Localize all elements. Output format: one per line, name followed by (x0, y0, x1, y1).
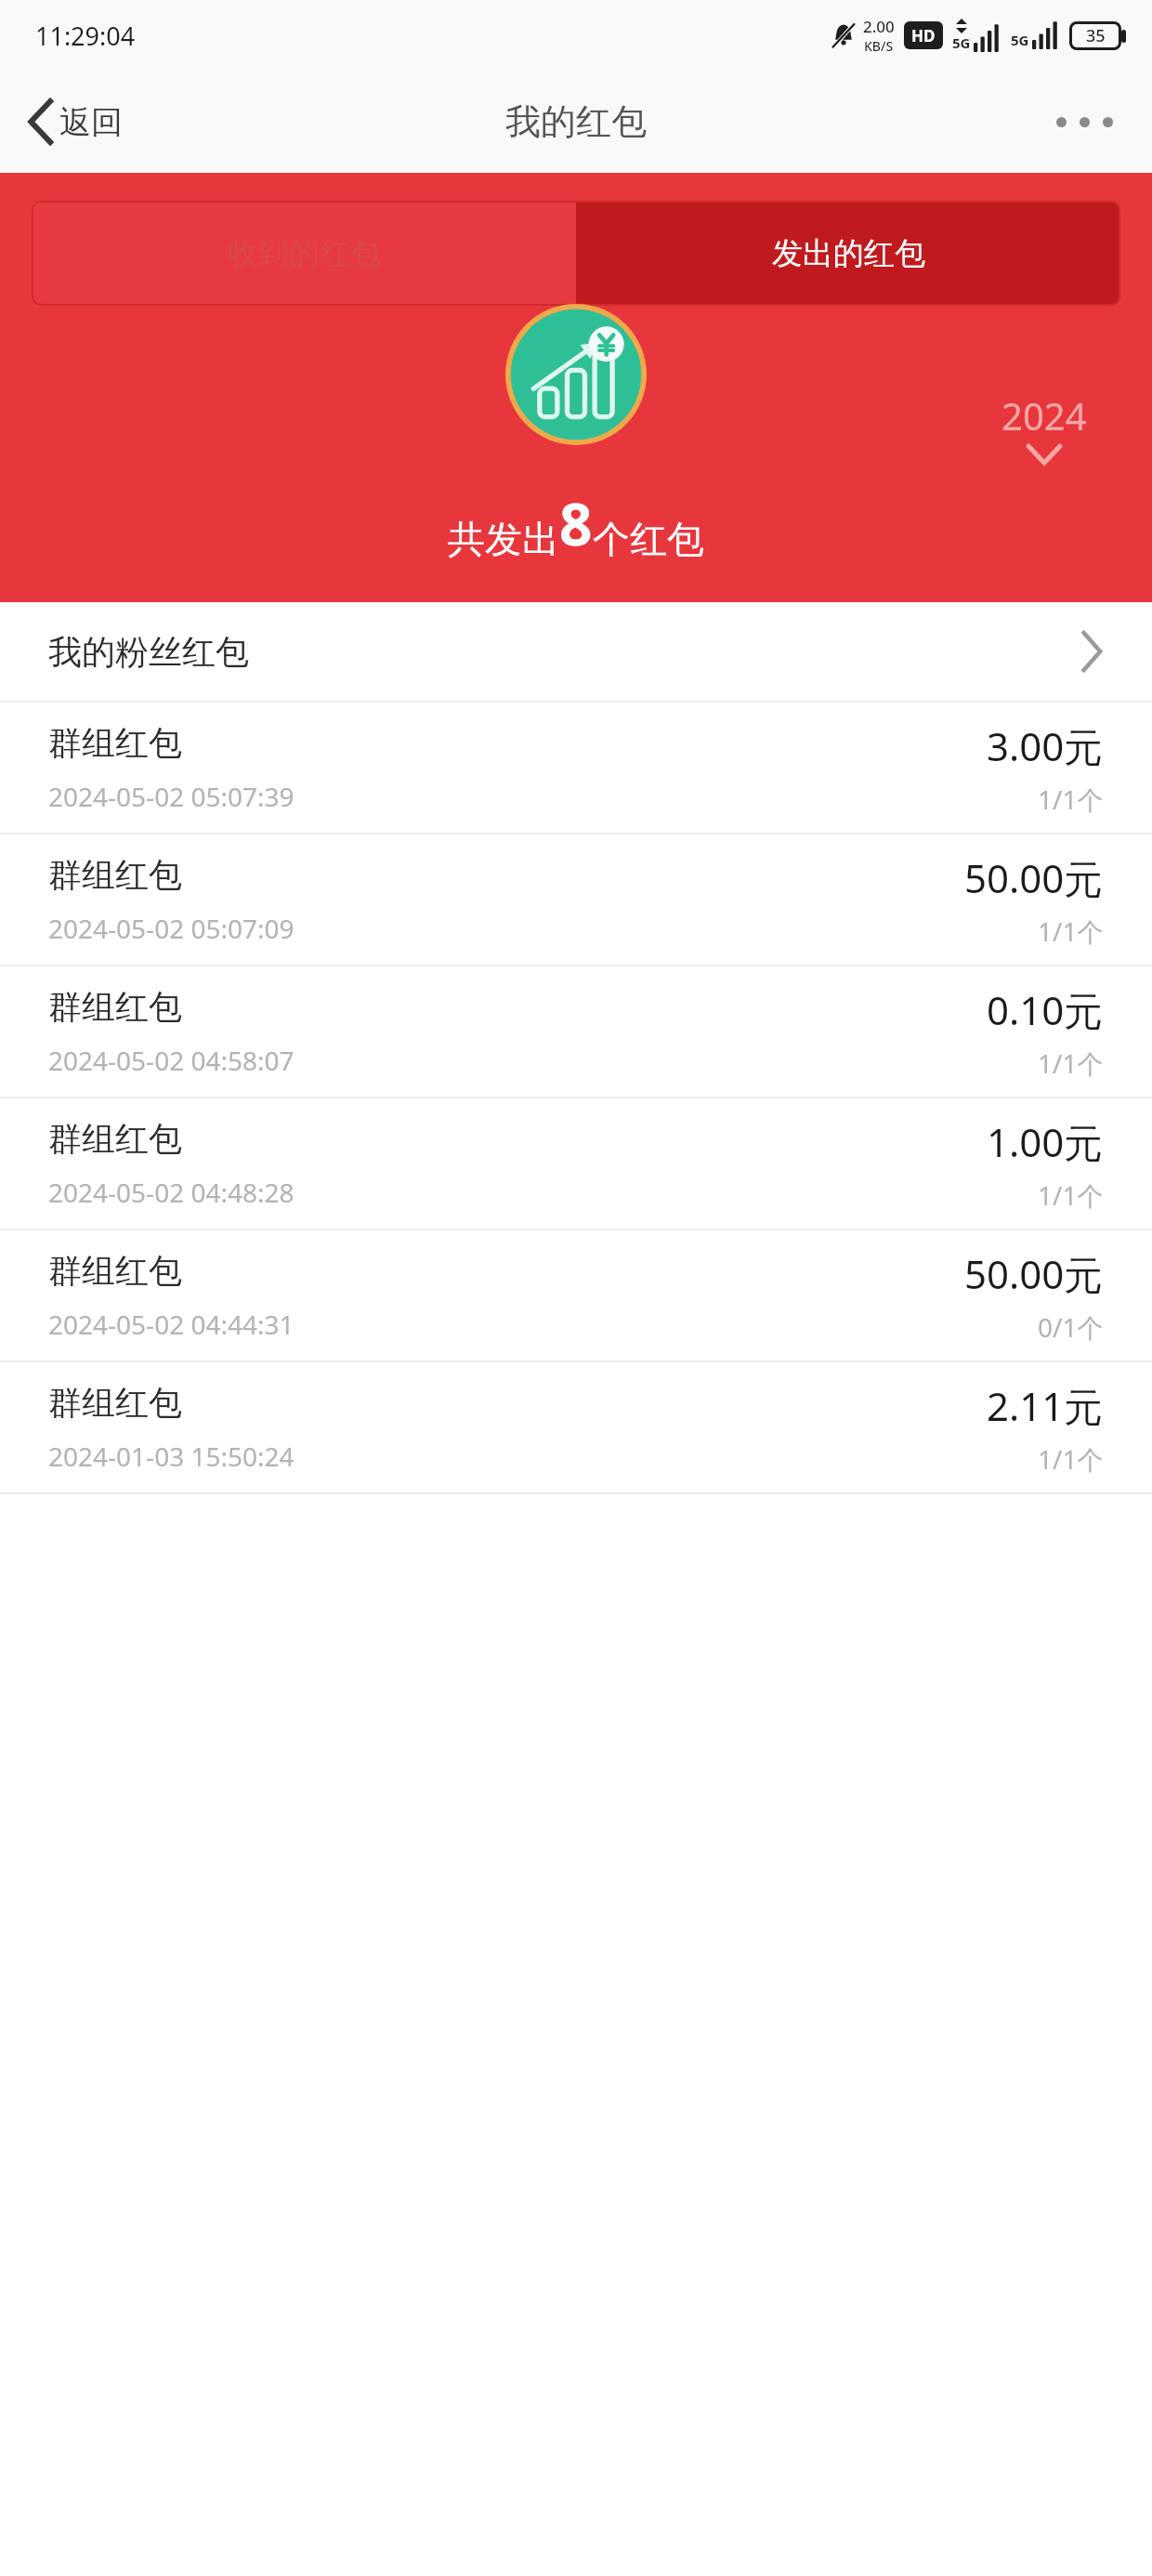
button[interactable]: 群组红包 (0, 1098, 1152, 1229)
staticText: 8 (559, 484, 593, 562)
staticText: 共发出 (448, 516, 559, 562)
button[interactable]: 群组红包 (0, 1362, 1152, 1492)
staticText: 群组红包 (48, 1250, 182, 1292)
button[interactable]: 群组红包 (0, 703, 1152, 833)
staticText: 0/1个 (1038, 1309, 1104, 1345)
staticText: 50.00元 (964, 1247, 1104, 1300)
staticText: 11:29:04 (35, 19, 136, 53)
staticText: 2.11元 (987, 1379, 1104, 1432)
staticText: 发出的红包 (772, 234, 925, 273)
staticText: 0.10元 (987, 983, 1104, 1036)
staticText: 2024-05-02 04:44:31 (48, 1307, 295, 1342)
staticText: 2024-01-03 15:50:24 (48, 1439, 295, 1474)
staticText: 2024-05-02 05:07:09 (48, 911, 295, 946)
staticText: 35 (1086, 24, 1106, 47)
staticText: 50.00元 (964, 851, 1104, 904)
staticText: 2024-05-02 04:58:07 (48, 1043, 295, 1078)
staticText: 2.00 (863, 16, 895, 37)
staticText: 返回 (59, 102, 123, 142)
button[interactable]: 群组红包 (0, 1230, 1152, 1360)
staticText: KB/S (864, 37, 894, 55)
staticText: 收到的红包 (228, 234, 381, 273)
staticText: 1/1个 (1038, 913, 1104, 949)
staticText: 1/1个 (1038, 782, 1104, 817)
staticText: 我的红包 (505, 99, 647, 144)
staticText: 2024-05-02 05:07:39 (48, 779, 295, 814)
staticText: 3.00元 (987, 719, 1104, 772)
staticText: 5G (1011, 31, 1029, 49)
staticText: 2024 (1001, 390, 1087, 440)
button[interactable]: 我的粉丝红包 (0, 602, 1152, 701)
staticText: HD (911, 25, 936, 46)
staticText: 1/1个 (1038, 1177, 1104, 1213)
staticText: 我的粉丝红包 (48, 631, 249, 673)
staticText: 1.00元 (987, 1115, 1104, 1168)
staticText: 2024-05-02 04:48:28 (48, 1175, 295, 1210)
button[interactable]: 收到的红包 (32, 201, 576, 306)
button[interactable]: 返回 (20, 94, 132, 150)
staticText: 群组红包 (48, 1382, 182, 1424)
staticText: 群组红包 (48, 854, 182, 896)
staticText: 群组红包 (48, 722, 182, 764)
staticText: 群组红包 (48, 1118, 182, 1160)
staticText: 1/1个 (1038, 1045, 1104, 1081)
button[interactable]: 2024 (992, 387, 1096, 467)
staticText: 1/1个 (1038, 1441, 1104, 1477)
button[interactable]: More options (1045, 106, 1124, 138)
button[interactable]: 群组红包 (0, 966, 1152, 1097)
staticText: 个红包 (593, 516, 704, 562)
staticText: 5G (952, 33, 971, 52)
button[interactable]: 发出的红包 (576, 201, 1120, 306)
staticText: 群组红包 (48, 986, 182, 1028)
button[interactable]: 群组红包 (0, 835, 1152, 965)
